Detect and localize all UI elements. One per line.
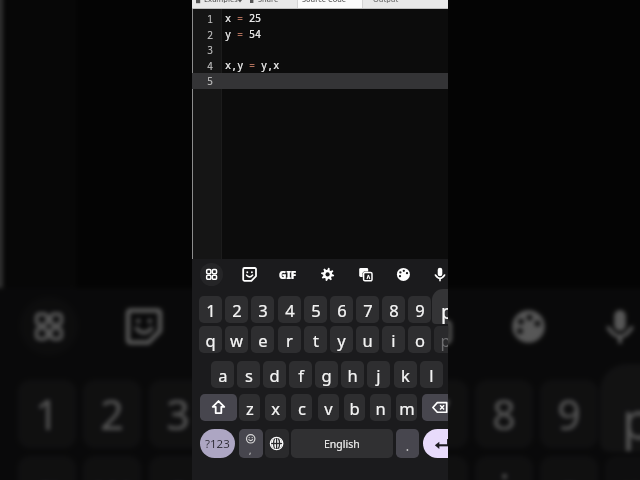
button[interactable]: Keyboard modes [200,263,223,286]
button[interactable]: 6 [344,380,402,448]
staticText: e [258,329,268,351]
button[interactable]: GIF [279,268,297,282]
button[interactable]: p [434,326,448,353]
staticText: n [375,397,386,419]
staticText: u [426,462,452,480]
staticText: i [499,462,510,480]
button[interactable]: Source Code [302,0,347,3]
staticText: x,y [225,58,250,72]
button[interactable]: r [278,326,301,353]
button[interactable]: n [370,394,391,421]
button[interactable]: e [149,456,207,480]
button[interactable]: 7 [410,380,468,448]
button[interactable]: s [237,361,260,388]
button[interactable]: y [344,456,402,480]
button[interactable]: 4 [214,380,272,448]
button[interactable]: Backspace [422,394,448,421]
button[interactable]: Examples [204,0,238,3]
button[interactable]: i [382,326,405,353]
button[interactable]: h [341,361,364,388]
button[interactable]: 2 [225,296,248,323]
button[interactable]: o [408,326,431,353]
staticText: 0 [622,386,640,442]
button[interactable]: Keyboard modes [20,297,78,355]
button[interactable]: w [225,326,248,353]
button[interactable]: k [394,361,417,388]
button[interactable]: GIF [218,311,261,345]
button[interactable]: a [211,361,234,388]
button[interactable]: Space [291,429,393,458]
button[interactable]: j [367,361,390,388]
staticText: 1 [206,299,216,321]
staticText: u [362,329,373,351]
staticText: b [349,397,360,419]
button[interactable]: Output [373,0,399,3]
button[interactable]: v [318,394,339,421]
button[interactable]: f [289,361,312,388]
button[interactable]: Emoji [239,429,263,458]
button[interactable]: 7 [356,296,379,323]
button[interactable]: Period [396,429,419,458]
button[interactable]: 1 [199,296,222,323]
staticText: m [399,397,415,419]
button[interactable]: 5 [304,296,327,323]
button[interactable]: g [315,361,338,388]
button[interactable]: y [330,326,353,353]
staticText: l [429,364,434,386]
button[interactable]: 3 [149,380,207,448]
staticText: t [313,329,319,351]
button[interactable]: u [410,456,468,480]
button[interactable]: c [291,394,312,421]
button[interactable]: 9 [408,296,431,323]
button[interactable]: Share [258,0,279,3]
button[interactable]: d [263,361,286,388]
button[interactable]: r [214,456,272,480]
button[interactable]: 1 [18,380,76,448]
button[interactable]: Shift [200,394,237,421]
button[interactable]: u [356,326,379,353]
staticText: 1 [35,386,59,442]
staticText: y,x [261,58,280,72]
button[interactable]: 2 [83,380,141,448]
button[interactable]: z [239,394,260,421]
button[interactable]: Language [265,429,289,458]
button[interactable]: t [279,456,337,480]
button[interactable]: 5 [279,380,337,448]
button[interactable]: l [420,361,443,388]
staticText: y [225,27,238,41]
staticText: s [245,364,253,386]
button[interactable]: ?123 [200,429,235,458]
button[interactable]: m [396,394,417,421]
button[interactable]: t [304,326,327,353]
button[interactable]: e [251,326,274,353]
staticText: 1 [207,12,214,26]
staticText: d [269,364,280,386]
staticText: 2 [100,386,124,442]
button[interactable]: 9 [540,380,598,448]
button[interactable]: 6 [330,296,353,323]
button[interactable]: q [199,326,222,353]
button[interactable]: 0 [605,380,640,448]
staticText: p [441,298,448,325]
button[interactable]: Enter [423,429,448,458]
button[interactable] [298,0,362,9]
button[interactable]: 0 [434,296,448,323]
button[interactable]: 8 [382,296,405,323]
button[interactable]: 8 [475,380,533,448]
button[interactable]: 3 [251,296,274,323]
staticText: 0 [441,299,448,321]
button[interactable]: i [475,456,533,480]
staticText: p [622,386,640,454]
button[interactable]: 4 [278,296,301,323]
staticText: 3 [166,386,190,442]
button[interactable]: b [344,394,365,421]
button[interactable]: x [265,394,286,421]
